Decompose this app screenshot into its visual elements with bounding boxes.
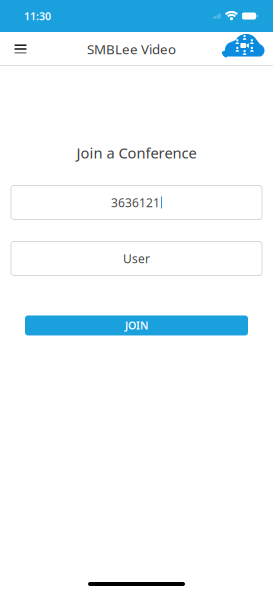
- staticText: 11:30: [24, 9, 51, 23]
- staticText: User: [123, 250, 150, 266]
- staticText: 3636121: [111, 194, 160, 210]
- staticText: Join a Conference: [76, 143, 196, 162]
- button[interactable]: Menu: [0, 32, 41, 66]
- staticText: SMBLee Video: [87, 40, 176, 58]
- staticText: JOIN: [125, 318, 148, 333]
- button[interactable]: JOIN: [25, 315, 248, 335]
